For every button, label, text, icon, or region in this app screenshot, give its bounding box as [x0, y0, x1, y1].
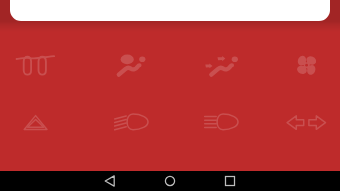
button[interactable]: Turn signals: [255, 94, 340, 151]
button[interactable]: Home: [151, 171, 189, 191]
button[interactable]: Hazard lights: [0, 94, 85, 151]
button[interactable]: High beam headlights: [170, 94, 255, 151]
button[interactable]: Heated seat: [85, 37, 170, 94]
button[interactable]: Low beam headlights: [85, 94, 170, 151]
button[interactable]: Ventilated seat: [170, 37, 255, 94]
button[interactable]: Back: [91, 171, 129, 191]
button[interactable]: Recents: [211, 171, 249, 191]
button[interactable]: Fan speed: [255, 37, 340, 94]
button[interactable]: Defrost: [0, 37, 85, 94]
